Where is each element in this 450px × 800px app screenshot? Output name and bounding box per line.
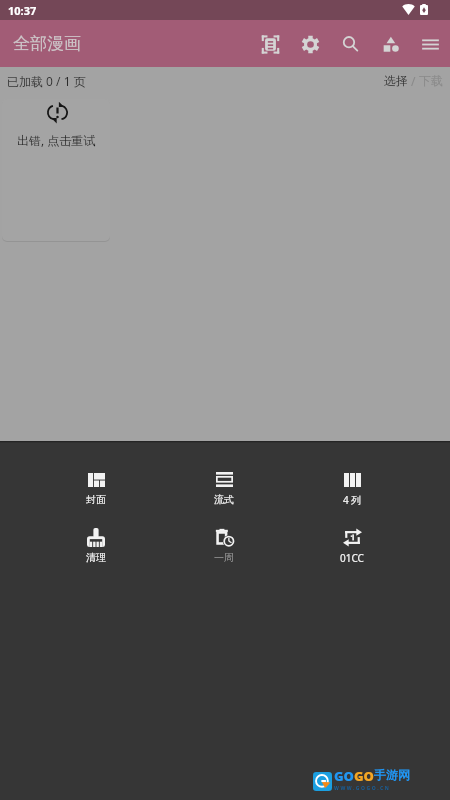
staticText: 出错, 点击重试	[17, 132, 96, 148]
staticText: /	[408, 73, 419, 89]
staticText: WWW.GOGO.CN	[334, 785, 391, 792]
button[interactable]: 01CC	[288, 528, 416, 565]
staticText: 封面	[86, 493, 106, 506]
staticText: 手游网	[374, 767, 410, 782]
button[interactable]: 下载	[419, 73, 443, 88]
button[interactable]: Search	[330, 22, 370, 66]
button[interactable]: 一周	[160, 528, 288, 564]
button[interactable]: Scan document	[250, 22, 290, 66]
staticText: 流式	[214, 493, 234, 506]
staticText: 01CC	[340, 551, 364, 565]
button[interactable]: 封面	[32, 470, 160, 506]
staticText: 已加载 0 / 1 页	[7, 73, 86, 89]
button[interactable]: 清理	[32, 528, 160, 564]
staticText: 清理	[86, 551, 106, 564]
staticText: GO	[334, 767, 354, 785]
button[interactable]: 出错, 点击重试	[2, 99, 110, 241]
button[interactable]: 4 列	[288, 470, 416, 507]
button[interactable]: 选择	[384, 73, 408, 88]
button[interactable]: Categories	[370, 22, 410, 66]
staticText: 10:37	[8, 3, 37, 18]
staticText: 一周	[214, 551, 234, 564]
staticText: 全部漫画	[13, 33, 81, 54]
button[interactable]: Settings	[290, 22, 330, 66]
button[interactable]: Menu	[410, 22, 450, 66]
button[interactable]: 流式	[160, 470, 288, 506]
staticText: GO	[354, 767, 374, 785]
staticText: 4 列	[343, 493, 362, 507]
